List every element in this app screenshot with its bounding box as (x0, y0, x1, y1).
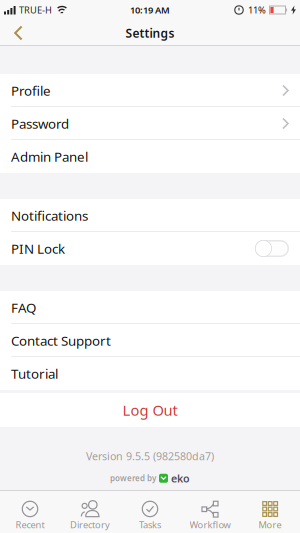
button[interactable]: More (240, 491, 300, 533)
button[interactable]: Admin Panel (0, 140, 300, 173)
button[interactable]: Recent (0, 491, 60, 533)
button[interactable]: Tasks (120, 491, 180, 533)
button[interactable]: Notifications (0, 199, 300, 232)
button[interactable]: Workflow (180, 491, 240, 533)
button[interactable]: Profile (0, 74, 300, 107)
staticText: Password (11, 115, 69, 132)
button[interactable]: Contact Support (0, 324, 300, 357)
button[interactable]: Tutorial (0, 357, 300, 390)
staticText: Version 9.5.5 (982580da7) (86, 449, 214, 463)
staticText: Log Out (122, 400, 177, 420)
button[interactable]: FAQ (0, 291, 300, 324)
staticText: Settings (125, 25, 174, 41)
staticText: 11% (248, 4, 266, 16)
staticText: More (258, 518, 281, 531)
button[interactable]: PIN Lock (255, 240, 289, 257)
staticText: Tutorial (11, 365, 58, 382)
staticText: eko (171, 471, 190, 485)
staticText: FAQ (11, 299, 36, 316)
staticText: Workflow (189, 518, 230, 531)
staticText: Contact Support (11, 332, 111, 349)
button[interactable]: Log Out (0, 393, 300, 427)
button[interactable]: Back (0, 20, 23, 45)
staticText: Directory (70, 518, 110, 531)
button[interactable]: Directory (60, 491, 120, 533)
staticText: PIN Lock (11, 240, 65, 257)
staticText: TRUE-H (19, 4, 52, 16)
staticText: powered by (110, 473, 156, 483)
staticText: Admin Panel (11, 148, 88, 165)
button[interactable]: Password (0, 107, 300, 140)
staticText: Recent (15, 518, 44, 531)
staticText: Tasks (139, 518, 161, 531)
staticText: 10:19 AM (130, 4, 170, 16)
staticText: Profile (11, 82, 51, 99)
staticText: Notifications (11, 207, 88, 224)
